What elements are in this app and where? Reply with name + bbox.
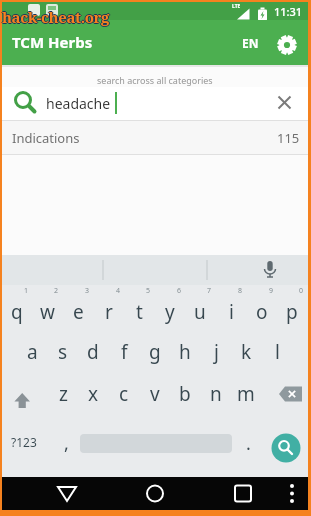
- button[interactable]: k: [231, 337, 261, 367]
- button[interactable]: [271, 434, 301, 464]
- staticText: 1: [24, 286, 29, 296]
- staticText: 3: [85, 286, 90, 296]
- staticText: 2: [54, 286, 59, 296]
- button[interactable]: n: [201, 379, 231, 409]
- button[interactable]: o: [247, 297, 277, 327]
- button[interactable]: s: [48, 337, 78, 367]
- staticText: h: [179, 339, 191, 365]
- staticText: headache: [46, 94, 111, 113]
- button[interactable]: e: [63, 297, 93, 327]
- button[interactable]: headache: [2, 87, 308, 120]
- button[interactable]: l: [262, 337, 292, 367]
- button[interactable]: p: [277, 297, 307, 327]
- staticText: 0: [299, 286, 304, 296]
- button[interactable]: v: [140, 379, 170, 409]
- button[interactable]: Indications: [2, 121, 308, 154]
- button[interactable]: j: [201, 337, 231, 367]
- button[interactable]: b: [170, 379, 200, 409]
- staticText: i: [229, 299, 234, 325]
- button[interactable]: ?123: [6, 430, 42, 454]
- button[interactable]: [228, 477, 258, 510]
- staticText: 8: [238, 286, 243, 296]
- staticText: p: [286, 299, 298, 325]
- staticText: hack-cheat.org: [3, 7, 110, 27]
- button[interactable]: q: [2, 297, 32, 327]
- staticText: EN: [242, 35, 259, 51]
- button[interactable]: [275, 33, 299, 57]
- button[interactable]: [282, 477, 302, 510]
- button[interactable]: [140, 477, 170, 510]
- staticText: l: [275, 339, 280, 365]
- staticText: z: [59, 381, 68, 407]
- staticText: r: [105, 299, 113, 325]
- staticText: ?123: [11, 434, 37, 450]
- staticText: search across all categories: [97, 74, 213, 86]
- button[interactable]: u: [185, 297, 215, 327]
- button[interactable]: ,: [54, 431, 78, 455]
- button[interactable]: [7, 390, 41, 416]
- staticText: 4: [116, 286, 121, 296]
- staticText: 7: [207, 286, 212, 296]
- staticText: c: [119, 381, 129, 407]
- staticText: n: [210, 381, 222, 407]
- staticText: hack-cheat.org: [2, 6, 109, 26]
- staticText: hack-cheat.org: [2, 7, 109, 27]
- staticText: ,: [64, 431, 69, 455]
- staticText: e: [73, 299, 84, 325]
- button[interactable]: EN: [236, 35, 264, 51]
- staticText: t: [136, 299, 143, 325]
- staticText: m: [237, 381, 255, 407]
- staticText: a: [27, 339, 38, 365]
- button[interactable]: a: [17, 337, 47, 367]
- staticText: 5: [146, 286, 151, 296]
- staticText: f: [121, 339, 128, 365]
- button[interactable]: f: [109, 337, 139, 367]
- button[interactable]: h: [170, 337, 200, 367]
- button[interactable]: z: [48, 379, 78, 409]
- staticText: x: [88, 381, 99, 407]
- staticText: 6: [177, 286, 182, 296]
- staticText: .: [246, 431, 251, 455]
- staticText: 115: [277, 129, 300, 147]
- staticText: g: [149, 339, 161, 365]
- button[interactable]: .: [236, 431, 260, 455]
- button[interactable]: [52, 477, 82, 510]
- button[interactable]: t: [124, 297, 154, 327]
- staticText: o: [256, 299, 268, 325]
- staticText: Indications: [12, 129, 80, 147]
- button[interactable]: w: [32, 297, 62, 327]
- staticText: 9: [269, 286, 274, 296]
- button[interactable]: m: [231, 379, 261, 409]
- staticText: hack-cheat.org: [1, 7, 108, 27]
- button[interactable]: y: [155, 297, 185, 327]
- button[interactable]: r: [94, 297, 124, 327]
- button[interactable]: [274, 379, 308, 409]
- staticText: j: [214, 339, 219, 365]
- button[interactable]: c: [109, 379, 139, 409]
- staticText: d: [87, 339, 99, 365]
- staticText: LTE: [232, 3, 241, 10]
- staticText: w: [40, 299, 55, 325]
- button[interactable]: i: [216, 297, 246, 327]
- staticText: hack-cheat.org: [2, 8, 109, 28]
- staticText: k: [241, 339, 252, 365]
- staticText: 11:31: [274, 4, 303, 18]
- staticText: v: [150, 381, 160, 407]
- button[interactable]: g: [140, 337, 170, 367]
- staticText: q: [11, 299, 23, 325]
- staticText: y: [165, 299, 175, 325]
- staticText: TCM Herbs: [12, 32, 93, 52]
- button[interactable]: x: [78, 379, 108, 409]
- staticText: u: [194, 299, 206, 325]
- staticText: s: [58, 339, 68, 365]
- staticText: b: [179, 381, 191, 407]
- button[interactable]: d: [78, 337, 108, 367]
